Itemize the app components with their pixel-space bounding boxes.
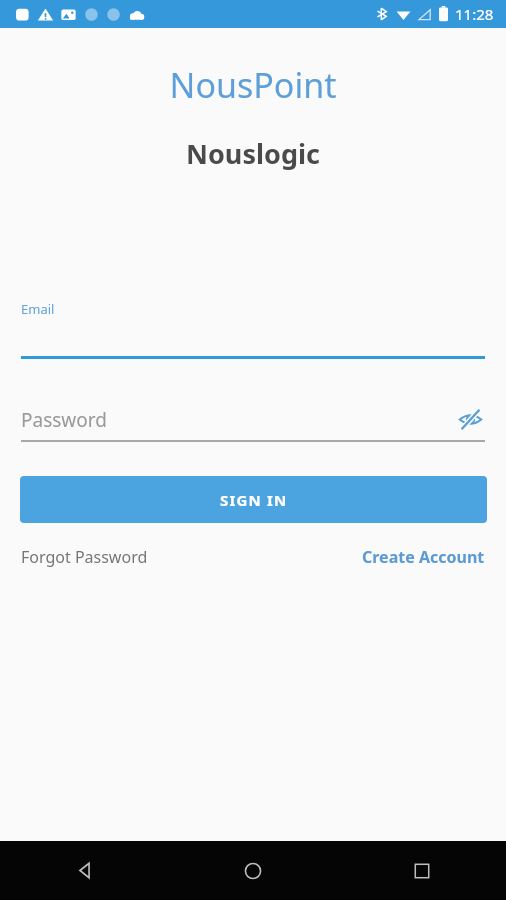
button[interactable]: Recent apps [337,841,506,900]
staticText: Forgot Password [21,546,148,568]
staticText: NousPoint [0,62,506,108]
staticText: SIGN IN [220,490,288,510]
staticText: Email [21,300,55,318]
staticText: Create Account [362,546,485,568]
button[interactable]: Back [0,841,168,900]
staticText: Password [21,407,107,433]
button[interactable]: Show password [453,402,487,436]
button[interactable]: Email [21,296,485,359]
button[interactable]: SIGN IN [20,476,487,523]
button[interactable]: Home [168,841,337,900]
staticText: Nouslogic [0,135,506,172]
button[interactable]: Forgot Password [14,541,155,573]
button[interactable]: Password [21,404,485,442]
staticText: 11:28 [455,4,494,24]
button[interactable]: Create Account [355,541,492,573]
